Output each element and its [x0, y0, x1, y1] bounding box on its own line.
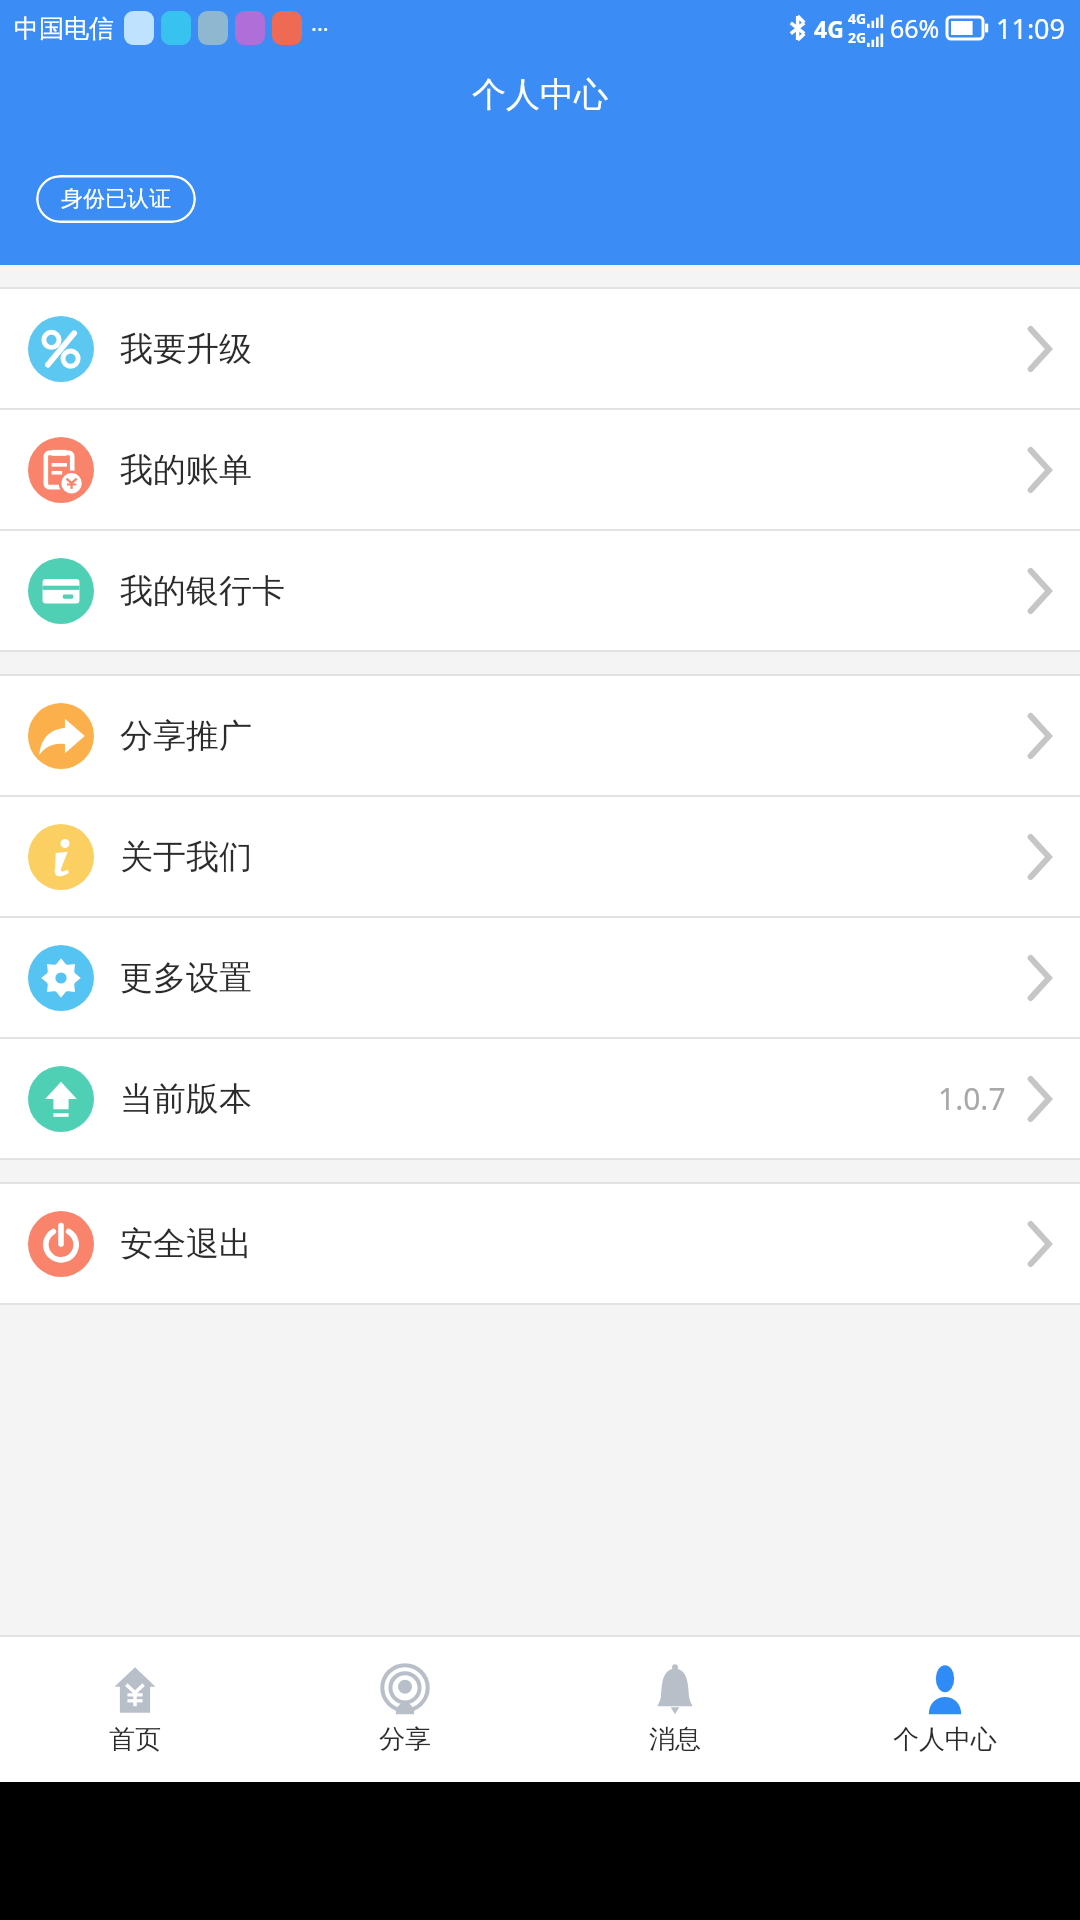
staticText: 分享推广 [120, 715, 252, 757]
staticText: 我要升级 [120, 328, 252, 370]
staticText: 更多设置 [120, 957, 252, 999]
staticText: 安全退出 [120, 1223, 252, 1265]
staticText: 首页 [109, 1723, 161, 1756]
staticText: ··· [311, 13, 329, 43]
staticText: 4G [814, 13, 844, 44]
staticText: 个人中心 [472, 73, 608, 116]
staticText: 关于我们 [120, 836, 252, 878]
staticText: 我的银行卡 [120, 570, 285, 612]
staticText: 2G [848, 28, 867, 47]
staticText: 4G [848, 9, 867, 28]
button[interactable]: 更多设置 [0, 918, 1080, 1037]
staticText: 我的账单 [120, 449, 252, 491]
button[interactable]: 我的账单 [0, 410, 1080, 529]
button[interactable]: 我要升级 [0, 289, 1080, 408]
staticText: 中国电信 [14, 13, 114, 44]
staticText: 消息 [649, 1723, 701, 1756]
staticText: 身份已认证 [61, 185, 171, 213]
button[interactable]: 关于我们 [0, 797, 1080, 916]
staticText: 分享 [379, 1723, 431, 1756]
button[interactable]: 消息 [540, 1637, 810, 1782]
button[interactable]: 我的银行卡 [0, 531, 1080, 650]
button[interactable]: 当前版本 [0, 1039, 1080, 1158]
button[interactable]: 个人中心 [810, 1637, 1080, 1782]
button[interactable]: 分享推广 [0, 676, 1080, 795]
button[interactable]: 安全退出 [0, 1184, 1080, 1303]
staticText: 个人中心 [893, 1723, 997, 1756]
button[interactable]: 身份已认证 [36, 175, 196, 223]
staticText: 1.0.7 [938, 1078, 1006, 1119]
button[interactable]: 分享 [270, 1637, 540, 1782]
staticText: 11:09 [996, 10, 1066, 47]
button[interactable]: 首页 [0, 1637, 270, 1782]
staticText: 当前版本 [120, 1078, 252, 1120]
staticText: 66% [890, 11, 940, 45]
